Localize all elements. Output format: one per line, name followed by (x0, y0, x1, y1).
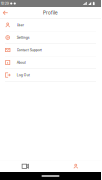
button[interactable]: Back (0, 7, 11, 18)
button[interactable]: About (0, 56, 101, 69)
button[interactable]: Videos (0, 160, 50, 172)
button[interactable]: Contact Support (0, 44, 101, 56)
staticText: 10:29 (1, 1, 9, 6)
button[interactable]: Profile (50, 160, 101, 172)
staticText: User (17, 23, 24, 27)
staticText: About (17, 60, 26, 64)
button[interactable]: Settings (0, 31, 101, 44)
button[interactable]: User (0, 19, 101, 31)
staticText: Settings (17, 35, 30, 39)
staticText: Log Out (17, 73, 30, 77)
staticText: Contact Support (17, 48, 42, 52)
button[interactable]: Log Out (0, 69, 101, 81)
staticText: Profile (43, 10, 58, 15)
